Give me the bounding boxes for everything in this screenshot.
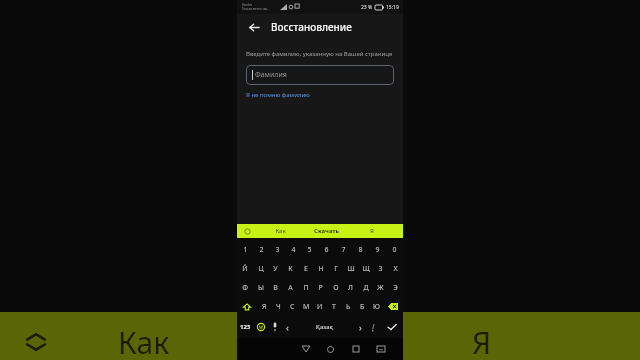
button[interactable]: Ы: [253, 278, 268, 297]
button[interactable]: Назад: [245, 18, 263, 36]
button[interactable]: Х: [388, 259, 403, 278]
button[interactable]: Влево: [281, 316, 294, 338]
button[interactable]: Эмодзи: [254, 316, 268, 338]
staticText: 23 %: [361, 4, 373, 11]
button[interactable]: Фамилия: [246, 65, 394, 85]
button[interactable]: 123: [237, 316, 254, 338]
staticText: Ь: [346, 302, 351, 312]
button[interactable]: З: [373, 259, 388, 278]
button[interactable]: Й: [237, 259, 253, 278]
button[interactable]: Ь: [341, 297, 355, 316]
staticText: Ш: [347, 264, 355, 274]
staticText: Я не помню фамилию: [246, 91, 310, 99]
button[interactable]: 7: [335, 240, 352, 259]
staticText: Как: [275, 227, 286, 235]
staticText: Л: [348, 283, 353, 293]
button[interactable]: Ф: [237, 278, 253, 297]
staticText: 9: [375, 245, 380, 255]
button[interactable]: 3: [269, 240, 285, 259]
button[interactable]: 6: [318, 240, 335, 259]
button[interactable]: И: [313, 297, 327, 316]
staticText: 5: [307, 245, 312, 255]
button[interactable]: Скачать: [303, 224, 349, 238]
button[interactable]: Shift: [237, 297, 257, 316]
button[interactable]: Ж: [373, 278, 388, 297]
button[interactable]: Голосовой ввод: [268, 316, 281, 338]
staticText: Н: [318, 264, 324, 274]
button[interactable]: Как: [257, 224, 303, 238]
staticText: 123: [240, 323, 251, 331]
staticText: Қазақ: [316, 323, 333, 331]
button[interactable]: Развернуть подсказки: [237, 224, 257, 238]
staticText: 2: [259, 245, 264, 255]
staticText: 7: [341, 245, 346, 255]
staticText: М: [303, 302, 310, 312]
button[interactable]: 4: [285, 240, 301, 259]
button[interactable]: А: [283, 278, 298, 297]
button[interactable]: Готово: [380, 316, 403, 338]
button[interactable]: 8: [352, 240, 369, 259]
button[interactable]: 9: [369, 240, 386, 259]
staticText: К: [288, 264, 293, 274]
button[interactable]: 5: [301, 240, 318, 259]
staticText: Г: [334, 264, 338, 274]
staticText: Щ: [362, 264, 370, 274]
button[interactable]: В: [268, 278, 283, 297]
staticText: Ю: [373, 302, 380, 312]
button[interactable]: Точка: [367, 316, 380, 338]
button[interactable]: Д: [358, 278, 373, 297]
staticText: Э: [393, 283, 398, 293]
button[interactable]: Е: [298, 259, 313, 278]
button[interactable]: С: [285, 297, 299, 316]
staticText: Й: [242, 264, 248, 274]
button[interactable]: Клавиатура: [368, 338, 393, 360]
button[interactable]: Қазақ: [294, 316, 354, 338]
button[interactable]: М: [299, 297, 313, 316]
staticText: Yandex: [242, 3, 253, 7]
button[interactable]: О: [328, 278, 343, 297]
button[interactable]: Я: [349, 224, 395, 238]
staticText: Р: [318, 283, 323, 293]
button[interactable]: Р: [313, 278, 328, 297]
staticText: 3: [275, 245, 280, 255]
button[interactable]: 0: [386, 240, 403, 259]
button[interactable]: Г: [328, 259, 343, 278]
button[interactable]: Э: [388, 278, 403, 297]
button[interactable]: Л: [343, 278, 358, 297]
staticText: З: [378, 264, 383, 274]
staticText: У: [273, 264, 278, 274]
staticText: Ж: [377, 283, 384, 293]
button[interactable]: 2: [253, 240, 269, 259]
button[interactable]: Ц: [253, 259, 268, 278]
button[interactable]: Удалить: [383, 297, 403, 316]
staticText: Я: [472, 322, 492, 360]
staticText: Восстановление: [271, 20, 352, 34]
staticText: Ф: [242, 283, 248, 293]
button[interactable]: Ш: [343, 259, 358, 278]
button[interactable]: Я: [257, 297, 271, 316]
button[interactable]: Ч: [271, 297, 285, 316]
button[interactable]: У: [268, 259, 283, 278]
staticText: Д: [363, 283, 369, 293]
button[interactable]: Домой: [318, 338, 343, 360]
button[interactable]: Ю: [369, 297, 383, 316]
staticText: Как: [118, 322, 170, 360]
staticText: Е: [304, 264, 308, 274]
staticText: В: [273, 283, 278, 293]
button[interactable]: Назад: [293, 338, 318, 360]
button[interactable]: Н: [313, 259, 328, 278]
button[interactable]: Вправо: [354, 316, 367, 338]
button[interactable]: П: [298, 278, 313, 297]
button[interactable]: К: [283, 259, 298, 278]
button[interactable]: 1: [237, 240, 253, 259]
staticText: И: [317, 302, 323, 312]
staticText: Фамилия: [255, 70, 287, 80]
button[interactable]: Я не помню фамилию: [246, 91, 310, 99]
staticText: А: [288, 283, 293, 293]
button[interactable]: Недавние: [343, 338, 368, 360]
button[interactable]: Щ: [358, 259, 373, 278]
button[interactable]: Б: [355, 297, 369, 316]
staticText: 6: [324, 245, 329, 255]
staticText: О: [333, 283, 339, 293]
button[interactable]: Т: [327, 297, 341, 316]
